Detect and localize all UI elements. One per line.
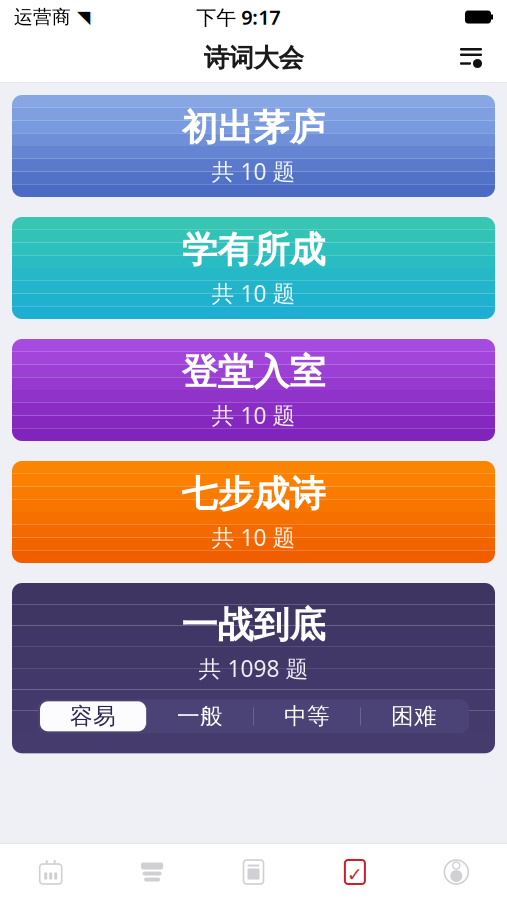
button[interactable]: 初出茅庐 bbox=[12, 95, 495, 197]
staticText: 七步成诗 bbox=[181, 472, 325, 516]
staticText: 共 10 题 bbox=[211, 400, 295, 430]
staticText: ✓ bbox=[347, 864, 363, 885]
staticText: ◥ bbox=[77, 7, 90, 27]
staticText: 学有所成 bbox=[181, 228, 325, 272]
button[interactable]: 学有所成 bbox=[12, 217, 495, 319]
staticText: 困难 bbox=[391, 702, 437, 730]
staticText: 共 1098 题 bbox=[198, 653, 308, 683]
button[interactable]: 诗词大会 bbox=[304, 844, 406, 900]
button[interactable]: 一战到底 bbox=[12, 603, 495, 683]
button[interactable]: 我的 bbox=[406, 844, 507, 900]
button[interactable]: 登堂入室 bbox=[12, 339, 495, 441]
staticText: 初出茅庐 bbox=[181, 106, 325, 150]
button[interactable]: 七步成诗 bbox=[12, 461, 495, 563]
button[interactable]: 卡片 bbox=[101, 844, 203, 900]
staticText: 共 10 题 bbox=[211, 278, 295, 308]
staticText: 登堂入室 bbox=[181, 350, 325, 394]
button[interactable]: 日历 bbox=[0, 844, 101, 900]
button[interactable]: 设置 bbox=[449, 40, 493, 76]
button[interactable]: 一般 bbox=[147, 701, 253, 731]
staticText: 共 10 题 bbox=[211, 156, 295, 186]
staticText: 下午 9:17 bbox=[196, 4, 280, 30]
staticText: 一般 bbox=[177, 702, 223, 730]
staticText: 运营商 bbox=[14, 5, 71, 28]
button[interactable]: 困难 bbox=[361, 701, 467, 731]
button[interactable]: 书籍 bbox=[203, 844, 304, 900]
staticText: 共 10 题 bbox=[211, 522, 295, 552]
staticText: 一战到底 bbox=[181, 603, 325, 647]
button[interactable]: 中等 bbox=[254, 701, 360, 731]
button[interactable]: 容易 bbox=[40, 701, 146, 731]
staticText: 容易 bbox=[70, 702, 116, 730]
staticText: 中等 bbox=[284, 702, 330, 730]
staticText: 诗词大会 bbox=[203, 42, 303, 73]
